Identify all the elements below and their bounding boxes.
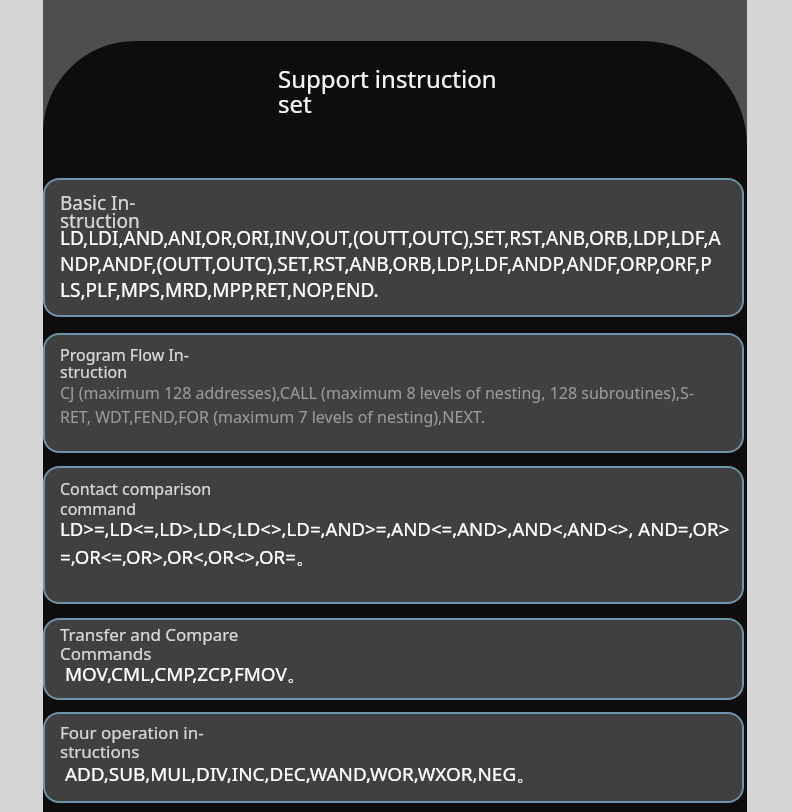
button[interactable]: Basic In- struction xyxy=(43,178,744,317)
staticText: CJ (maximum 128 addresses),CALL (maximum… xyxy=(60,382,695,428)
button[interactable]: Contact comparison command xyxy=(43,466,744,604)
staticText: Four operation in- structions xyxy=(60,721,204,763)
staticText: Program Flow In- struction xyxy=(60,344,189,382)
staticText: LD,LDI,AND,ANI,OR,ORI,INV,OUT,(OUTT,OUTC… xyxy=(60,225,721,303)
button[interactable]: Transfer and Compare Commands xyxy=(43,618,744,700)
staticText: ADD,SUB,MUL,DIV,INC,DEC,WAND,WOR,WXOR,NE… xyxy=(60,761,536,787)
staticText: MOV,CML,CMP,ZCP,FMOV。 xyxy=(60,661,306,687)
staticText: Support instruction set xyxy=(278,62,535,120)
button[interactable]: Four operation in- structions xyxy=(43,712,744,803)
staticText: Transfer and Compare Commands xyxy=(60,623,239,665)
button[interactable]: Program Flow In- struction xyxy=(43,333,744,453)
staticText: Contact comparison command xyxy=(60,478,212,519)
staticText: Basic In- struction xyxy=(60,190,140,234)
staticText: LD>=,LD<=,LD>,LD<,LD<>,LD=,AND>=,AND<=,A… xyxy=(60,516,730,569)
